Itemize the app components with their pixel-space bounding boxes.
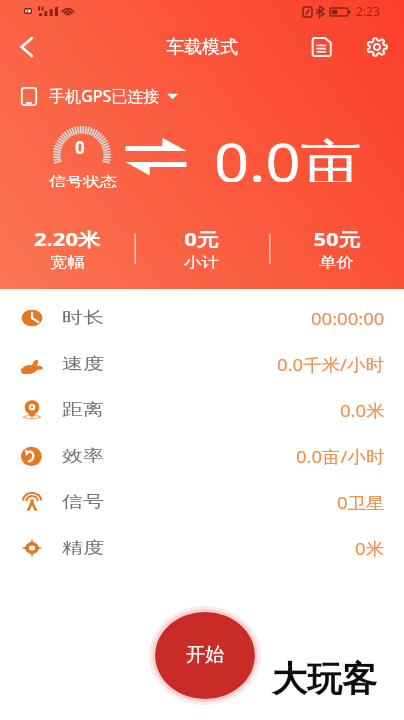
staticText: 0元 xyxy=(184,227,219,251)
button[interactable]: Back xyxy=(6,27,46,67)
button[interactable]: 速度 xyxy=(0,341,404,387)
staticText: 单价 xyxy=(319,253,354,271)
staticText: 精度 xyxy=(62,538,104,558)
staticText: 信号状态 xyxy=(49,173,117,190)
staticText: 宽幅 xyxy=(50,253,85,271)
button[interactable]: Records xyxy=(301,27,341,67)
staticText: 0.0亩 xyxy=(214,126,363,182)
staticText: 开始 xyxy=(186,643,224,667)
button[interactable]: 0元 xyxy=(134,222,269,274)
staticText: 手机GPS已连接 xyxy=(49,85,160,107)
staticText: 时长 xyxy=(62,308,104,328)
button[interactable]: 信号 xyxy=(0,479,404,525)
staticText: 信号 xyxy=(62,492,104,512)
button[interactable]: 时长 xyxy=(0,295,404,341)
button[interactable]: 距离 xyxy=(0,387,404,433)
staticText: 0.0亩/小时 xyxy=(296,445,385,468)
button[interactable]: 50元 xyxy=(269,222,404,274)
staticText: 50元 xyxy=(313,227,361,251)
staticText: 小计 xyxy=(184,253,219,271)
button[interactable]: 手机GPS已连接 xyxy=(21,84,178,108)
button[interactable]: 2.20米 xyxy=(0,222,134,274)
staticText: 车载模式 xyxy=(166,36,238,59)
staticText: 0米 xyxy=(355,537,385,560)
staticText: 2.20米 xyxy=(34,227,100,251)
staticText: 速度 xyxy=(62,354,104,374)
staticText: 0卫星 xyxy=(337,491,385,514)
button[interactable]: Settings xyxy=(357,27,397,67)
staticText: 距离 xyxy=(62,400,104,420)
button[interactable]: 开始 xyxy=(149,606,261,705)
staticText: 大玩客 xyxy=(272,657,377,701)
staticText: 0.0米 xyxy=(340,399,385,422)
staticText: 0.0千米/小时 xyxy=(277,353,385,376)
staticText: 0 xyxy=(75,136,85,159)
button[interactable]: 效率 xyxy=(0,433,404,479)
staticText: 效率 xyxy=(62,446,104,466)
staticText: 2:23 xyxy=(356,3,380,19)
button[interactable]: 精度 xyxy=(0,525,404,571)
staticText: 00:00:00 xyxy=(311,307,385,330)
